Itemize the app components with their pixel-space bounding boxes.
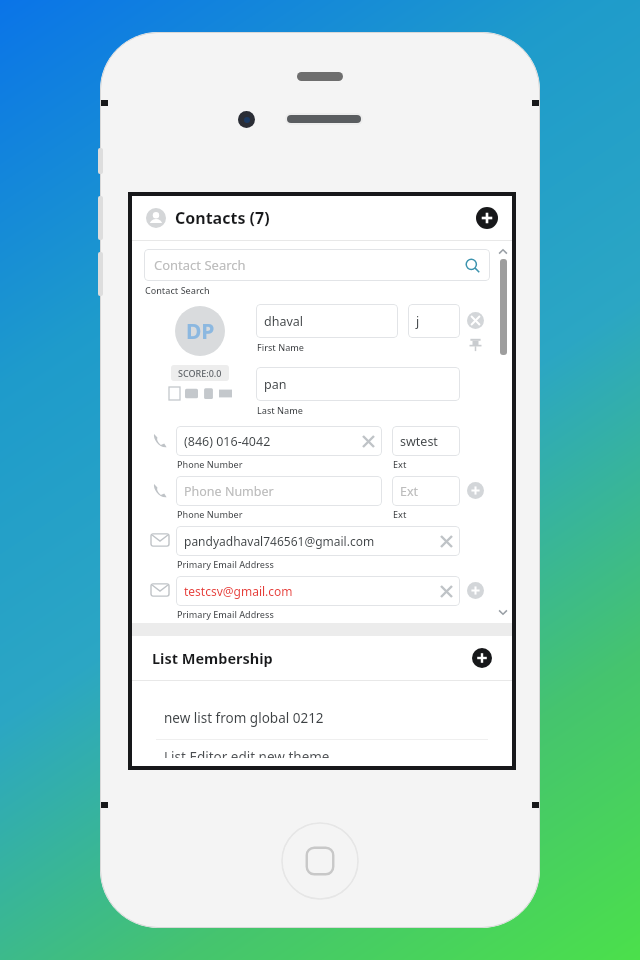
button[interactable]: (846) 016-4042 bbox=[176, 426, 382, 456]
staticText: Phone Number bbox=[177, 508, 243, 520]
button[interactable]: Pin bbox=[468, 337, 483, 352]
button[interactable]: dhaval bbox=[256, 304, 398, 338]
button[interactable]: Phone Number bbox=[176, 476, 382, 506]
button[interactable]: pan bbox=[256, 367, 460, 401]
staticText: Contacts (7) bbox=[175, 207, 270, 229]
staticText: pandyadhaval746561@gmail.com bbox=[184, 533, 441, 549]
staticText: j bbox=[416, 313, 452, 330]
button[interactable]: Ext bbox=[392, 476, 460, 506]
staticText: pan bbox=[264, 376, 452, 393]
staticText: Primary Email Address bbox=[177, 608, 274, 620]
button[interactable]: Contact Search bbox=[144, 249, 490, 281]
button[interactable]: Add contact bbox=[476, 207, 498, 229]
staticText: Primary Email Address bbox=[177, 558, 274, 570]
staticText: dhaval bbox=[264, 313, 390, 330]
button[interactable]: Action 4 bbox=[219, 387, 232, 400]
button[interactable]: testcsv@gmail.com bbox=[176, 576, 460, 606]
button[interactable]: Action 3 bbox=[202, 387, 215, 400]
staticText: new list from global 0212 bbox=[164, 709, 324, 727]
staticText: DP bbox=[186, 317, 215, 346]
button[interactable]: j bbox=[408, 304, 460, 338]
staticText: swtest bbox=[400, 433, 452, 450]
staticText: testcsv@gmail.com bbox=[184, 583, 441, 599]
button[interactable]: Account bbox=[146, 208, 166, 228]
staticText: Phone Number bbox=[184, 483, 374, 500]
button[interactable]: new list from global 0212 bbox=[132, 703, 512, 733]
button[interactable]: List Editor edit new theme bbox=[132, 740, 512, 766]
button[interactable]: Add row bbox=[467, 482, 484, 499]
staticText: First Name bbox=[257, 341, 304, 353]
staticText: (846) 016-4042 bbox=[184, 433, 363, 450]
button[interactable]: swtest bbox=[392, 426, 460, 456]
staticText: Last Name bbox=[257, 404, 303, 416]
staticText: Phone Number bbox=[177, 458, 243, 470]
button[interactable]: Add row bbox=[467, 582, 484, 599]
staticText: SCORE:0.0 bbox=[178, 367, 222, 379]
staticText: List Editor edit new theme bbox=[164, 748, 330, 758]
staticText: Contact Search bbox=[154, 256, 465, 274]
staticText: Contact Search bbox=[145, 284, 210, 296]
staticText: Ext bbox=[400, 483, 452, 500]
button[interactable]: Action 2 bbox=[185, 387, 198, 400]
staticText: Ext bbox=[393, 458, 407, 470]
button[interactable]: pandyadhaval746561@gmail.com bbox=[176, 526, 460, 556]
button[interactable]: Remove bbox=[467, 312, 484, 329]
staticText: List Membership bbox=[152, 648, 273, 668]
button[interactable]: Action 1 bbox=[168, 387, 181, 400]
button[interactable]: Add list bbox=[472, 648, 492, 668]
staticText: Ext bbox=[393, 508, 407, 520]
